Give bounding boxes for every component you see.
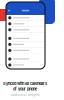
staticText: additional widgets	[11, 93, 39, 97]
staticText: of your phone	[13, 87, 37, 91]
staticText: Synced with all calendars	[3, 81, 47, 86]
